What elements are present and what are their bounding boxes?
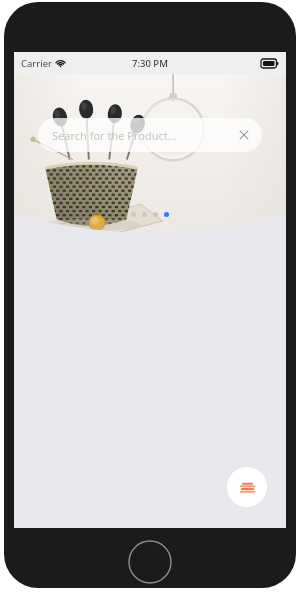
staticText: Search for the Product... xyxy=(52,128,177,143)
staticText: 7:30 PM xyxy=(132,57,168,70)
staticText: Carrier xyxy=(21,57,52,70)
button[interactable]: Search for the Product... xyxy=(38,118,262,152)
button[interactable] xyxy=(131,212,136,217)
button[interactable] xyxy=(153,212,158,217)
button[interactable] xyxy=(142,212,147,217)
button[interactable]: Filter and sort xyxy=(227,467,267,507)
button[interactable] xyxy=(164,212,169,217)
button[interactable]: Clear search xyxy=(236,127,252,143)
